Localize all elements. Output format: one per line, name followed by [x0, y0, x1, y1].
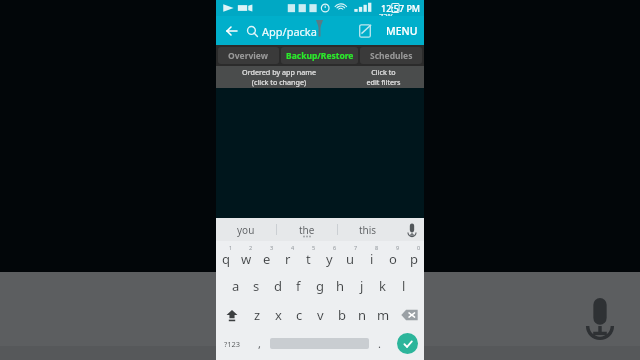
- staticText: 12:57 PM: [381, 2, 421, 14]
- staticText: e: [263, 250, 271, 268]
- staticText: j: [360, 277, 364, 295]
- button[interactable]: m: [373, 300, 394, 329]
- staticText: b: [338, 306, 346, 324]
- button[interactable]: Backup/Restore: [281, 47, 358, 64]
- staticText: v: [317, 306, 324, 324]
- button[interactable]: 8: [361, 241, 382, 271]
- staticText: t: [306, 250, 311, 268]
- button[interactable]: Edit filters: [354, 20, 376, 42]
- button[interactable]: Click to edit filters: [342, 66, 424, 88]
- button[interactable]: k: [372, 271, 393, 300]
- button[interactable]: a: [225, 271, 246, 300]
- button[interactable]: .: [369, 329, 390, 358]
- staticText: a: [232, 277, 240, 295]
- staticText: g: [316, 277, 324, 295]
- staticText: Backup/Restore: [286, 50, 354, 62]
- button[interactable]: 2: [236, 241, 256, 271]
- button[interactable]: c: [289, 300, 310, 329]
- staticText: 7: [354, 244, 358, 251]
- button[interactable]: Schedules: [360, 47, 422, 64]
- button[interactable]: Ordered by app name (click to change): [216, 66, 342, 88]
- staticText: x: [275, 306, 282, 324]
- staticText: f: [296, 277, 301, 295]
- staticText: this: [359, 223, 377, 237]
- staticText: 1: [229, 244, 233, 251]
- button[interactable]: 3: [256, 241, 277, 271]
- button[interactable]: Overview: [218, 47, 279, 64]
- button[interactable]: Voice input: [400, 218, 424, 241]
- button[interactable]: the: [277, 218, 337, 241]
- staticText: .: [378, 336, 381, 351]
- button[interactable]: 0: [403, 241, 424, 271]
- staticText: ,: [258, 336, 261, 351]
- button[interactable]: 6: [319, 241, 340, 271]
- staticText: h: [336, 277, 345, 295]
- staticText: Schedules: [370, 50, 413, 62]
- button[interactable]: h: [330, 271, 351, 300]
- button[interactable]: Backspace: [394, 300, 424, 329]
- button[interactable]: x: [268, 300, 289, 329]
- staticText: o: [389, 250, 397, 268]
- button[interactable]: 5: [298, 241, 319, 271]
- button[interactable]: l: [393, 271, 414, 300]
- button[interactable]: d: [267, 271, 288, 300]
- button[interactable]: n: [352, 300, 373, 329]
- staticText: 0: [417, 244, 421, 251]
- staticText: q: [222, 250, 230, 268]
- staticText: MENU: [386, 24, 418, 38]
- staticText: n: [358, 306, 367, 324]
- staticText: the: [299, 223, 315, 237]
- button[interactable]: f: [288, 271, 309, 300]
- button[interactable]: b: [331, 300, 352, 329]
- staticText: m: [377, 306, 390, 324]
- staticText: you: [237, 223, 255, 237]
- button[interactable]: 9: [382, 241, 403, 271]
- staticText: 2: [249, 244, 253, 251]
- button[interactable]: s: [246, 271, 267, 300]
- staticText: r: [285, 250, 291, 268]
- button[interactable]: 1: [216, 241, 236, 271]
- staticText: Ordered by app name (click to change): [242, 67, 316, 87]
- button[interactable]: ,: [249, 329, 270, 358]
- button[interactable]: 4: [277, 241, 298, 271]
- button[interactable]: z: [247, 300, 268, 329]
- staticText: Click to edit filters: [366, 67, 401, 87]
- button[interactable]: you: [216, 218, 276, 241]
- button[interactable]: App/packa: [246, 18, 356, 44]
- staticText: 4: [291, 244, 295, 251]
- staticText: i: [370, 250, 374, 268]
- button[interactable]: this: [338, 218, 398, 241]
- staticText: 6: [333, 244, 337, 251]
- button[interactable]: MENU: [380, 16, 424, 45]
- staticText: w: [241, 250, 252, 268]
- staticText: k: [379, 277, 386, 295]
- staticText: 73%: [379, 11, 394, 21]
- staticText: l: [402, 277, 406, 295]
- staticText: ?123: [224, 339, 241, 349]
- button[interactable]: Enter: [397, 333, 418, 354]
- button[interactable]: 7: [340, 241, 361, 271]
- button[interactable]: g: [309, 271, 330, 300]
- staticText: d: [274, 277, 282, 295]
- staticText: Overview: [228, 50, 269, 62]
- button[interactable]: Shift: [216, 300, 247, 329]
- staticText: c: [296, 306, 303, 324]
- button[interactable]: ?123: [216, 329, 249, 358]
- staticText: s: [253, 277, 260, 295]
- staticText: p: [410, 250, 418, 268]
- staticText: u: [346, 250, 355, 268]
- staticText: 3: [270, 244, 274, 251]
- staticText: z: [254, 306, 261, 324]
- button[interactable]: v: [310, 300, 331, 329]
- staticText: App/packa: [262, 24, 317, 39]
- button[interactable]: Back: [219, 18, 245, 44]
- staticText: 5: [312, 244, 316, 251]
- staticText: 9: [396, 244, 400, 251]
- staticText: y: [326, 250, 333, 268]
- staticText: 8: [375, 244, 379, 251]
- button[interactable]: j: [351, 271, 372, 300]
